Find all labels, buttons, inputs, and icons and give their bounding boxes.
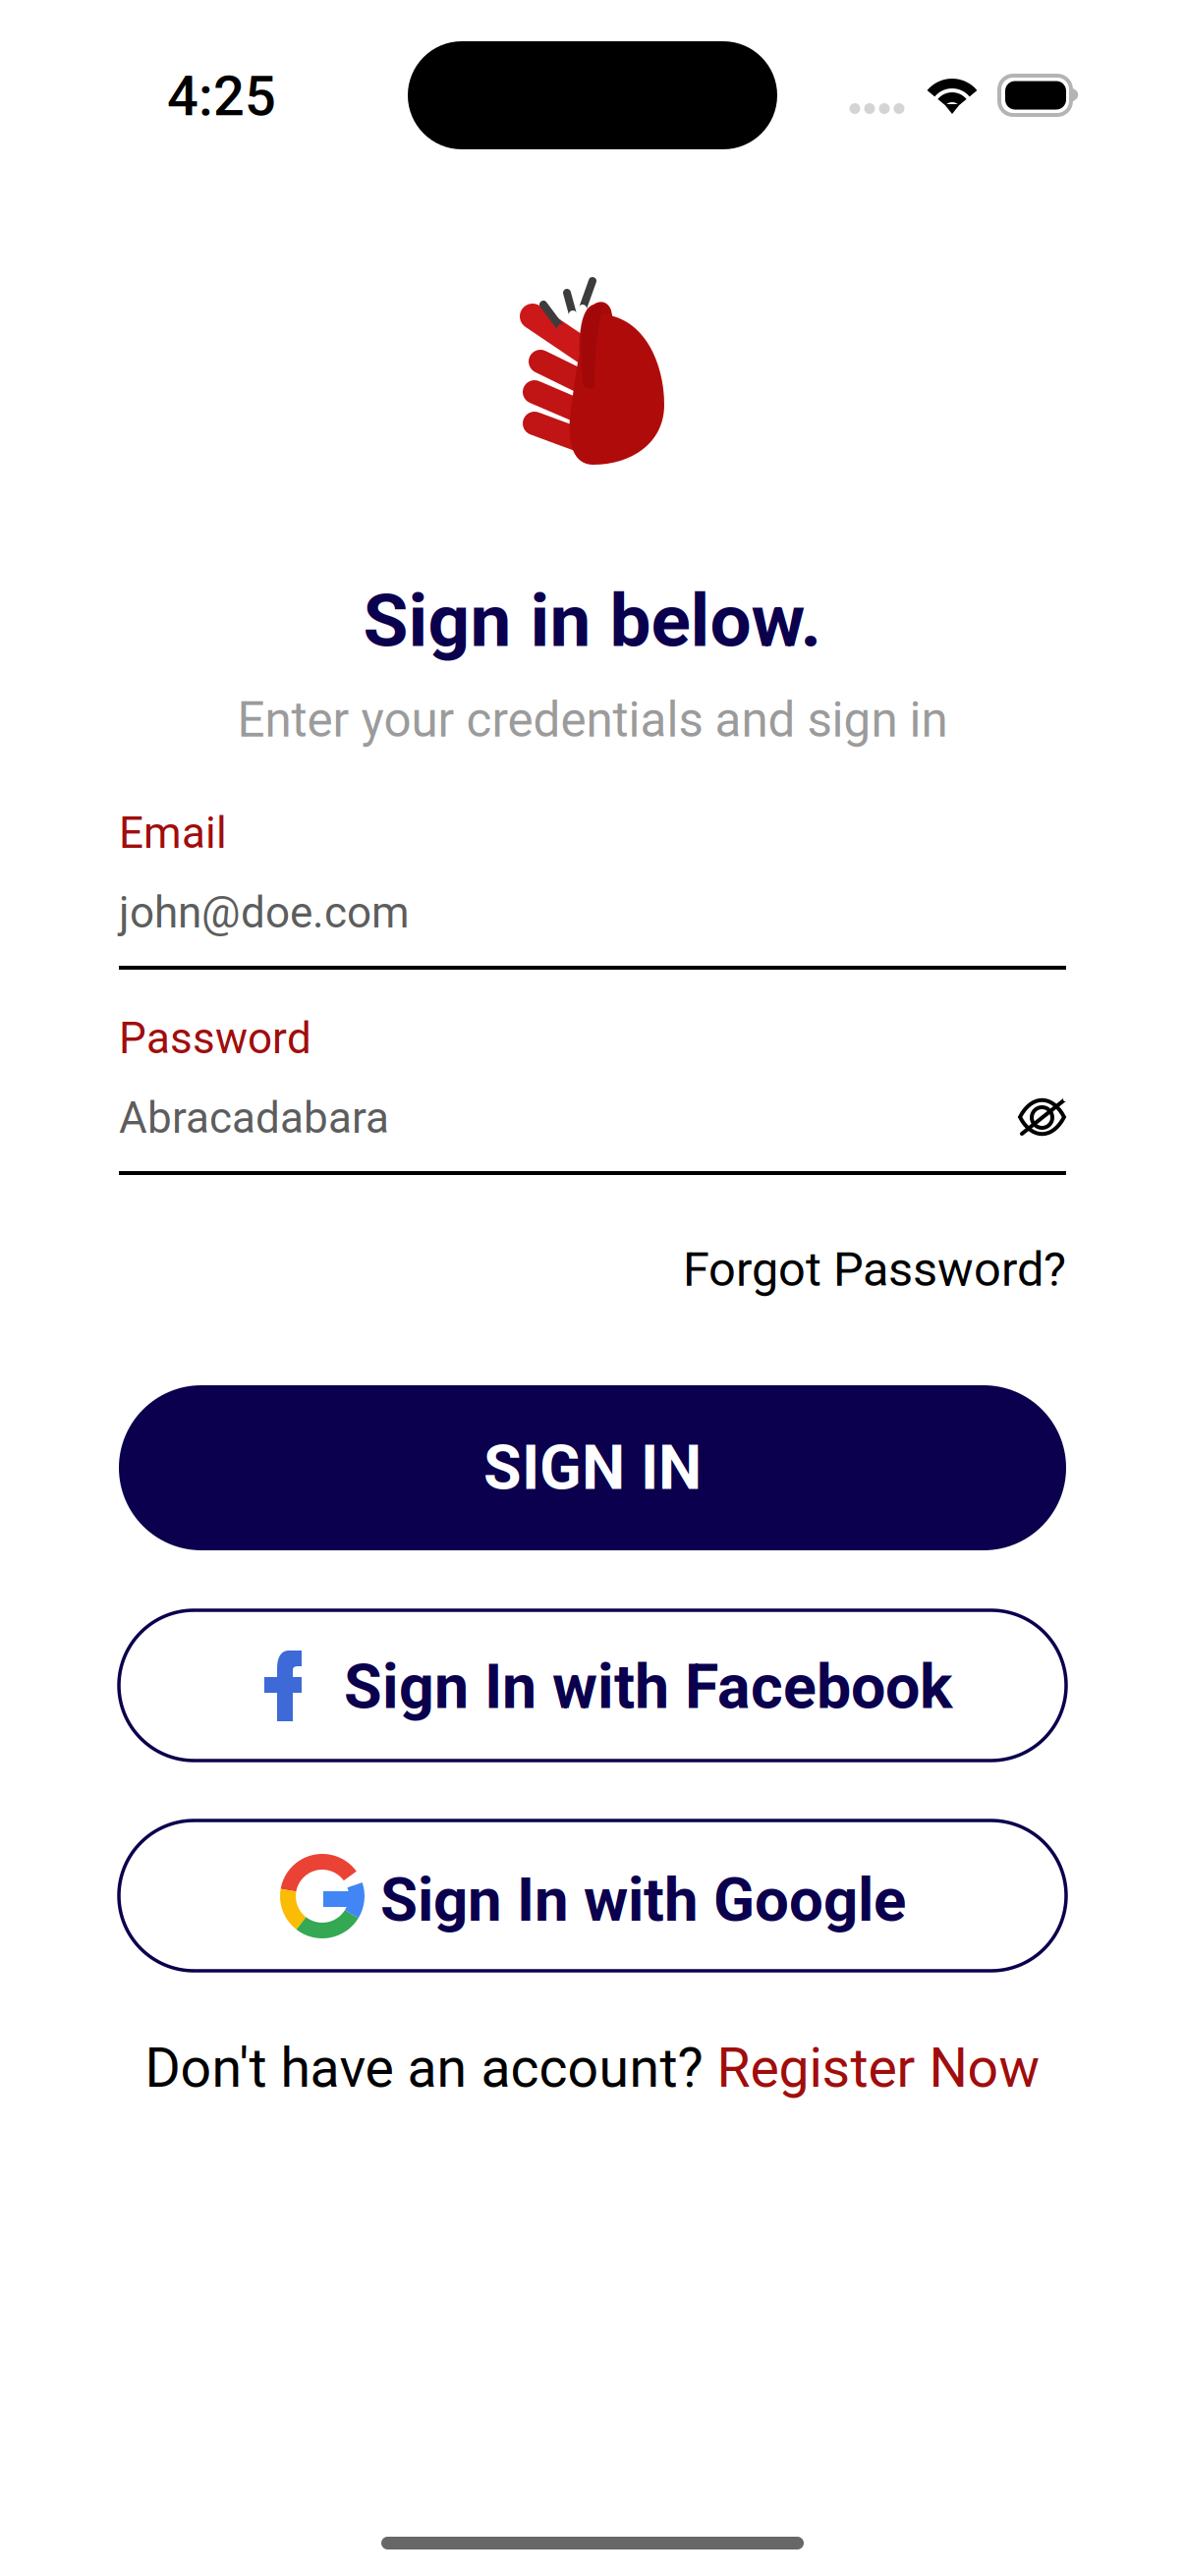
staticText: Don't have an account? — [145, 2036, 717, 2100]
staticText: Enter your credentials and sign in — [237, 692, 948, 749]
staticText: Forgot Password? — [683, 1241, 1066, 1297]
staticText: Register Now — [717, 2036, 1040, 2100]
staticText: Sign In with Facebook — [344, 1651, 952, 1723]
button[interactable]: Forgot Password? — [119, 1240, 1066, 1299]
staticText: john@doe.com — [119, 887, 410, 938]
staticText: Sign in below. — [363, 578, 822, 664]
button[interactable]: Don't have an account? — [0, 2034, 1185, 2102]
staticText: SIGN IN — [483, 1432, 702, 1504]
button[interactable]: Show password — [1004, 1082, 1083, 1152]
staticText: Abracadabara — [119, 1093, 389, 1143]
staticText: Password — [119, 1013, 311, 1064]
button[interactable]: Sign In with Facebook — [119, 1610, 1066, 1761]
button[interactable]: SIGN IN — [119, 1385, 1066, 1550]
staticText: Sign In with Google — [380, 1865, 906, 1936]
staticText: 4:25 — [167, 64, 276, 129]
staticText: Email — [119, 808, 227, 858]
button[interactable]: Sign In with Google — [119, 1820, 1066, 1971]
